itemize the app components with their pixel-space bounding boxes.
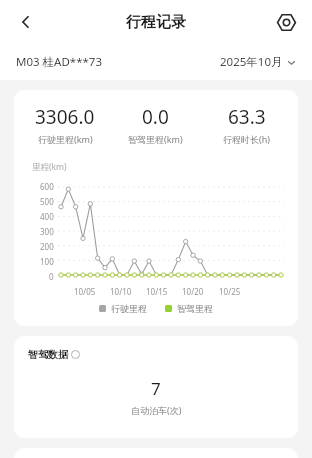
staticText: 7 <box>151 377 161 400</box>
staticText: M03 桂AD***73 <box>16 54 102 70</box>
button[interactable]: 63.3 <box>201 104 292 145</box>
button[interactable]: 0.0 <box>110 104 201 145</box>
button[interactable]: 3306.0 <box>20 104 110 145</box>
staticText: 行驶里程(km) <box>38 133 93 145</box>
staticText: 行程记录 <box>126 13 186 32</box>
staticText: 10/20 <box>182 286 204 297</box>
staticText: 里程(km) <box>32 161 67 173</box>
staticText: 300 <box>40 226 54 237</box>
staticText: 智驾里程(km) <box>128 133 183 145</box>
button[interactable]: 智驾里程 <box>165 303 213 314</box>
staticText: 600 <box>40 181 54 192</box>
staticText: 10/05 <box>74 286 96 297</box>
button[interactable]: 2025年10月 <box>220 54 296 70</box>
staticText: 行驶里程 <box>111 303 147 314</box>
staticText: 10/10 <box>110 286 132 297</box>
staticText: 行程时长(h) <box>223 133 270 145</box>
button[interactable]: 行驶里程 <box>99 303 147 314</box>
button[interactable]: Settings <box>268 4 304 40</box>
staticText: 10/15 <box>146 286 168 297</box>
button[interactable]: 智驾数据 <box>28 348 80 361</box>
staticText: 500 <box>40 196 54 207</box>
staticText: 100 <box>40 256 54 267</box>
staticText: 0.0 <box>142 104 169 130</box>
staticText: 智驾里程 <box>177 303 213 314</box>
staticText: 2025年10月 <box>220 54 283 70</box>
staticText: 自动泊车(次) <box>131 404 182 416</box>
staticText: 0 <box>49 271 54 282</box>
staticText: 10/25 <box>219 286 241 297</box>
other: Info <box>71 350 80 359</box>
staticText: 400 <box>40 211 54 222</box>
button[interactable]: Back <box>8 4 44 40</box>
staticText: 智驾数据 <box>28 348 68 361</box>
staticText: 63.3 <box>228 104 266 130</box>
staticText: 200 <box>40 241 54 252</box>
staticText: 3306.0 <box>35 104 95 130</box>
